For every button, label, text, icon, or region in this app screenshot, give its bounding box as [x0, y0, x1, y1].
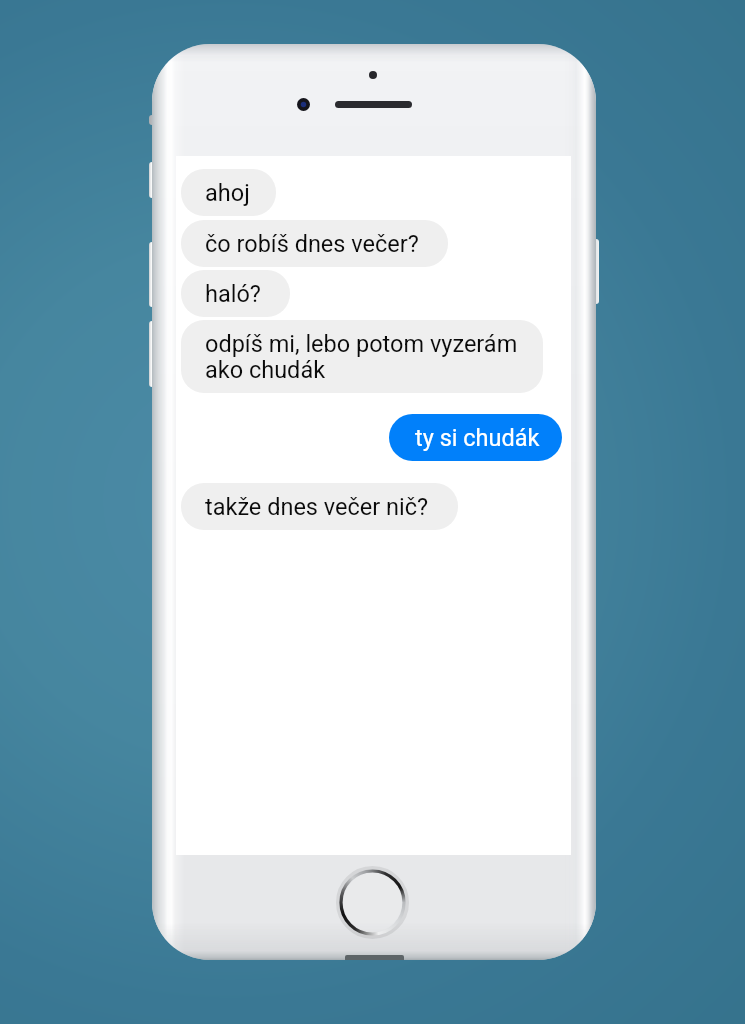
staticText: ty si chudák — [415, 424, 540, 452]
button[interactable]: Home — [339, 869, 406, 936]
staticText: takže dnes večer nič? — [205, 493, 429, 521]
button[interactable]: odpíš mi, lebo potom vyzerám ako chudák — [181, 320, 543, 393]
staticText: ahoj — [205, 179, 250, 207]
staticText: haló? — [205, 280, 261, 308]
staticText: čo robíš dnes večer? — [205, 230, 419, 258]
button[interactable]: takže dnes večer nič? — [181, 483, 458, 530]
button[interactable]: ahoj — [181, 169, 276, 216]
button[interactable]: čo robíš dnes večer? — [181, 220, 448, 267]
staticText: odpíš mi, lebo potom vyzerám ako chudák — [205, 330, 518, 384]
button[interactable]: ty si chudák — [389, 414, 562, 461]
button[interactable]: haló? — [181, 270, 290, 317]
